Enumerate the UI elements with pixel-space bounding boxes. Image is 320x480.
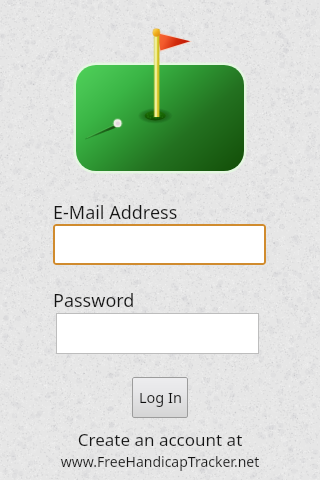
staticText: E-Mail Address [53,200,178,225]
staticText: Password [53,288,135,313]
staticText: Create an account at [0,428,320,451]
button[interactable]: Password input [56,313,259,354]
button[interactable]: Log In [132,377,188,418]
staticText: Log In [139,387,182,407]
button[interactable]: E-Mail Address input [53,224,266,265]
button[interactable]: www.FreeHandicapTracker.net [0,452,320,471]
